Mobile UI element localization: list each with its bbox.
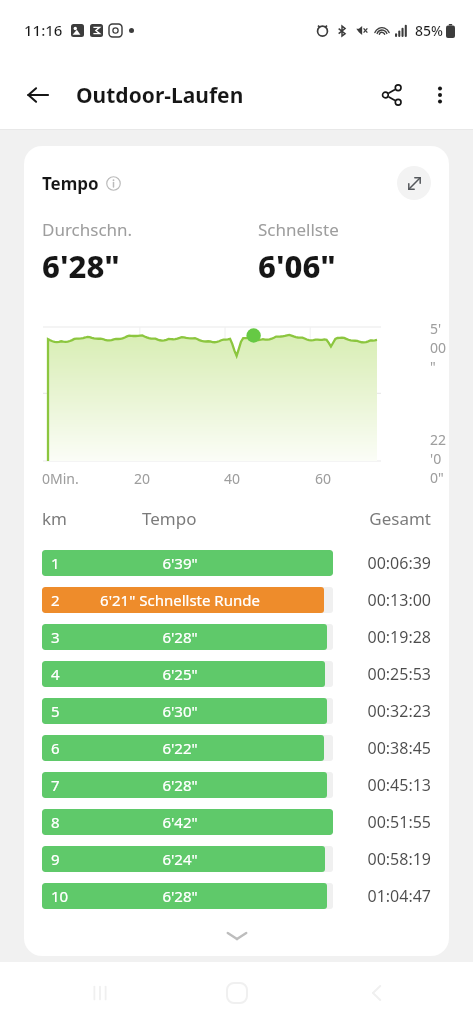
button[interactable]: 5	[24, 692, 449, 729]
staticText: Durchschn.	[42, 218, 133, 241]
staticText: 00:25:53	[345, 663, 431, 685]
button[interactable]: 6	[24, 729, 449, 766]
button[interactable]: 1	[24, 544, 449, 581]
button[interactable]: 3	[24, 618, 449, 655]
staticText: 7	[51, 775, 60, 795]
staticText: 2	[51, 590, 60, 610]
staticText: 5'00"	[430, 319, 449, 376]
button[interactable]: Teilen	[369, 72, 415, 118]
staticText: 6'42"	[162, 812, 198, 832]
staticText: 0Min.	[42, 469, 79, 488]
staticText: 6'28"	[162, 886, 198, 906]
staticText: 85%	[415, 21, 443, 40]
staticText: km	[42, 507, 142, 530]
staticText: 4	[51, 664, 60, 684]
staticText: 6'30"	[162, 701, 198, 721]
staticText: Tempo	[142, 507, 331, 530]
staticText: 60	[315, 469, 332, 488]
button[interactable]: Mehr anzeigen	[24, 920, 449, 952]
staticText: 9	[51, 849, 60, 869]
staticText: 22'00"	[430, 430, 449, 487]
staticText: Schnellste	[258, 218, 339, 241]
staticText: 00:32:23	[345, 700, 431, 722]
staticText: Outdoor-Laufen	[76, 81, 244, 110]
staticText: 20	[134, 469, 151, 488]
staticText: 00:19:28	[345, 626, 431, 648]
staticText: 00:06:39	[345, 552, 431, 574]
staticText: Tempo	[42, 172, 99, 195]
staticText: 40	[224, 469, 241, 488]
staticText: 1	[51, 553, 60, 573]
staticText: 00:51:55	[345, 811, 431, 833]
staticText: 6'24"	[162, 849, 198, 869]
button[interactable]: Startbildschirm	[213, 969, 261, 1017]
staticText: 8	[51, 812, 60, 832]
staticText: 10	[51, 886, 69, 906]
staticText: Gesamt	[331, 507, 431, 530]
button[interactable]: 8	[24, 803, 449, 840]
staticText: 6'25"	[162, 664, 198, 684]
staticText: 5	[51, 701, 60, 721]
staticText: 6'21" Schnellste Runde	[100, 590, 260, 610]
staticText: 6'28"	[42, 245, 120, 287]
staticText: 00:38:45	[345, 737, 431, 759]
staticText: 6'28"	[162, 775, 198, 795]
staticText: 6'39"	[162, 553, 198, 573]
staticText: 3	[51, 627, 60, 647]
button[interactable]: 2	[24, 581, 449, 618]
staticText: 6'28"	[162, 627, 198, 647]
button[interactable]: 9	[24, 840, 449, 877]
staticText: 01:04:47	[345, 885, 431, 907]
button[interactable]: 7	[24, 766, 449, 803]
staticText: 11:16	[24, 20, 63, 40]
button[interactable]: 4	[24, 655, 449, 692]
button[interactable]: Zurück	[14, 71, 62, 119]
staticText: 6'22"	[162, 738, 198, 758]
staticText: 00:45:13	[345, 774, 431, 796]
button[interactable]: Tempo	[42, 172, 121, 195]
button[interactable]: Vollbild	[397, 166, 431, 200]
button[interactable]: Weitere Optionen	[417, 72, 463, 118]
staticText: 00:13:00	[345, 589, 431, 611]
staticText: 00:58:19	[345, 848, 431, 870]
button[interactable]: 10	[24, 877, 449, 914]
staticText: 6	[51, 738, 60, 758]
staticText: 6'06"	[258, 245, 336, 287]
